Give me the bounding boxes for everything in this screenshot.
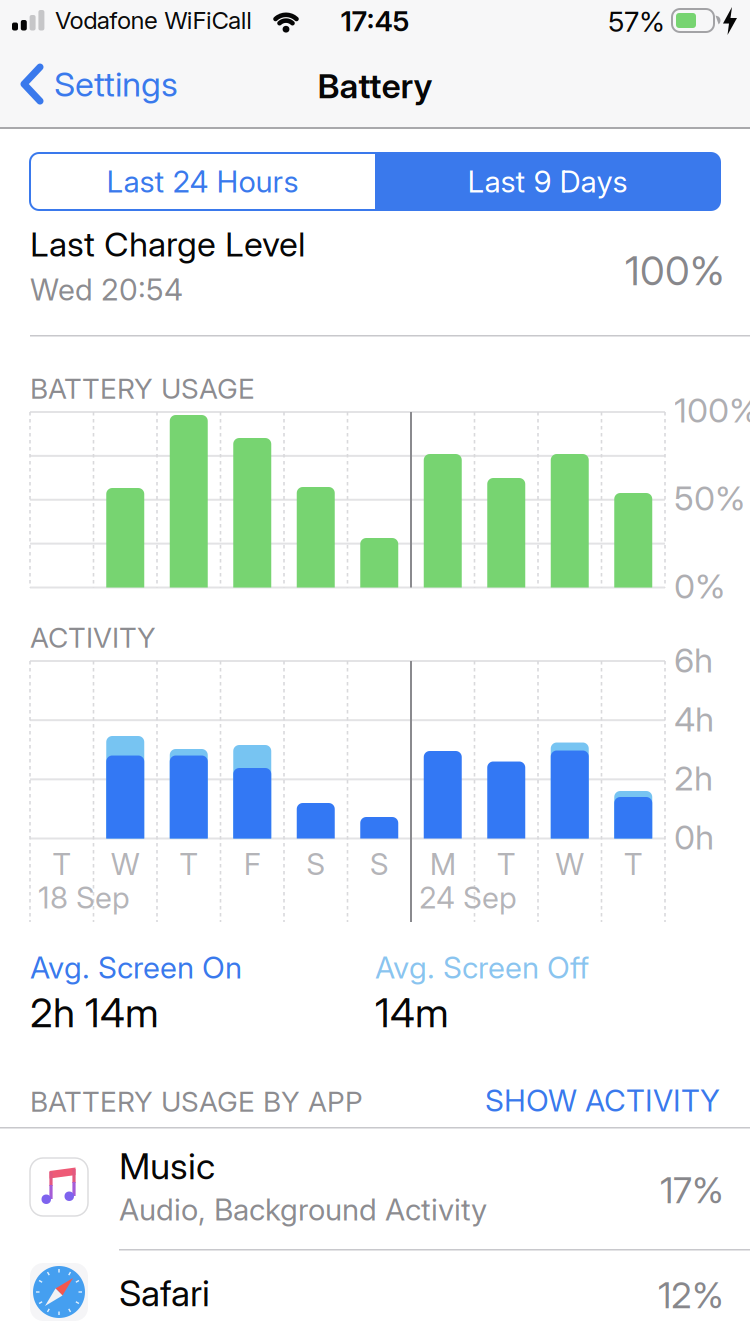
staticText: T — [624, 846, 643, 882]
staticText: Audio, Background Activity — [119, 1192, 487, 1227]
staticText: 0% — [674, 566, 725, 606]
button[interactable]: Last 9 Days — [375, 153, 720, 210]
staticText: T — [179, 846, 198, 882]
staticText: BATTERY USAGE BY APP — [30, 1085, 363, 1118]
staticText: Wed 20:54 — [30, 272, 183, 307]
staticText: ACTIVITY — [30, 621, 156, 654]
staticText: W — [111, 846, 140, 882]
staticText: S — [370, 846, 389, 882]
button[interactable]: Last 24 Hours — [30, 153, 375, 210]
staticText: 14m — [375, 989, 449, 1036]
staticText: 2h 14m — [30, 989, 159, 1036]
staticText: F — [244, 846, 261, 882]
staticText: Last 24 Hours — [106, 164, 298, 199]
button[interactable]: Music — [0, 1129, 750, 1249]
staticText: 100% — [674, 390, 750, 430]
staticText: 6h — [674, 640, 713, 680]
staticText: Safari — [119, 1272, 210, 1314]
staticText: 0h — [674, 817, 714, 857]
staticText: Avg. Screen Off — [375, 950, 589, 985]
staticText: M — [430, 846, 456, 882]
staticText: T — [52, 846, 71, 882]
staticText: BATTERY USAGE — [30, 372, 255, 405]
staticText: 18 Sep — [38, 880, 130, 915]
staticText: W — [555, 846, 584, 882]
staticText: 57% — [608, 5, 665, 38]
staticText: 50% — [674, 478, 745, 518]
staticText: 2h — [674, 758, 713, 798]
staticText: Music — [119, 1145, 215, 1187]
staticText: Avg. Screen On — [30, 950, 242, 985]
staticText: 24 Sep — [419, 880, 517, 915]
button[interactable]: Settings — [20, 64, 178, 104]
staticText: 100% — [625, 247, 724, 294]
staticText: Vodafone WiFiCall — [55, 6, 252, 34]
staticText: S — [306, 846, 325, 882]
button[interactable]: Safari — [0, 1251, 750, 1334]
staticText: Last 9 Days — [467, 164, 627, 199]
staticText: 12% — [658, 1274, 724, 1316]
staticText: T — [497, 846, 516, 882]
staticText: SHOW ACTIVITY — [485, 1083, 720, 1118]
staticText: 17% — [660, 1169, 724, 1211]
staticText: 4h — [674, 699, 714, 739]
button[interactable]: SHOW ACTIVITY — [420, 1083, 720, 1118]
staticText: Battery — [317, 66, 432, 106]
staticText: 17:45 — [340, 4, 409, 37]
staticText: Last Charge Level — [30, 224, 305, 264]
staticText: Settings — [54, 64, 178, 104]
